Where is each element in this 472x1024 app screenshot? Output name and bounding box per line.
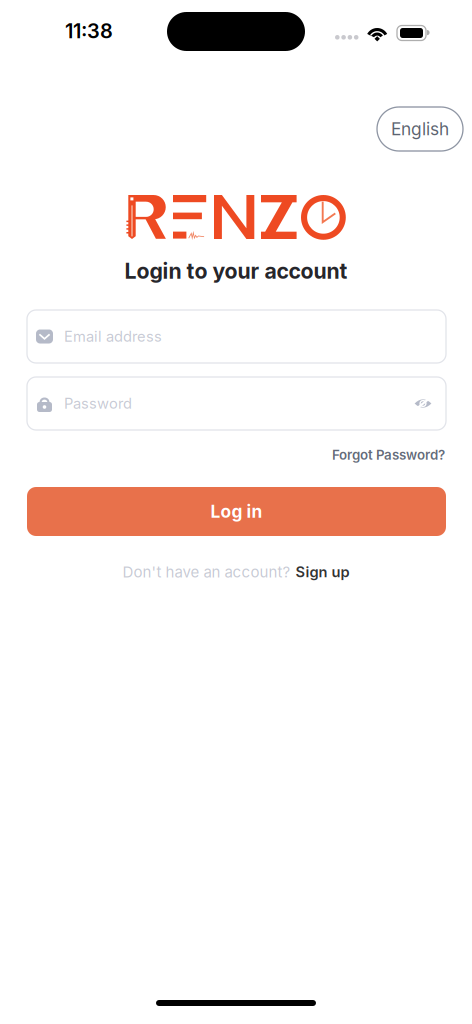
staticText: Login to your account: [124, 258, 347, 284]
button[interactable]: Log in: [27, 487, 446, 536]
button[interactable]: Show password: [414, 395, 432, 412]
staticText: Password: [64, 395, 132, 412]
staticText: Email address: [64, 328, 162, 345]
staticText: Forgot Password?: [332, 447, 445, 463]
staticText: Sign up: [295, 563, 349, 581]
staticText: Log in: [210, 501, 262, 522]
button[interactable]: Sign up: [290, 563, 349, 581]
button[interactable]: Forgot Password?: [305, 446, 445, 464]
staticText: Don't have an account?: [122, 563, 290, 581]
staticText: English: [391, 118, 449, 139]
staticText: 11:38: [65, 19, 113, 43]
button[interactable]: English: [377, 107, 463, 151]
